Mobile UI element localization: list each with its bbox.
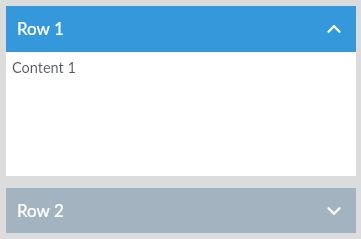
staticText: Row 2	[17, 200, 323, 220]
staticText: Row 1	[17, 18, 323, 38]
button[interactable]: Row 1	[6, 6, 356, 52]
button[interactable]: Row 2	[6, 188, 356, 233]
staticText: Content 1	[12, 59, 76, 76]
other: Collapse Row 1	[323, 18, 345, 40]
other: Expand Row 2	[323, 200, 345, 222]
